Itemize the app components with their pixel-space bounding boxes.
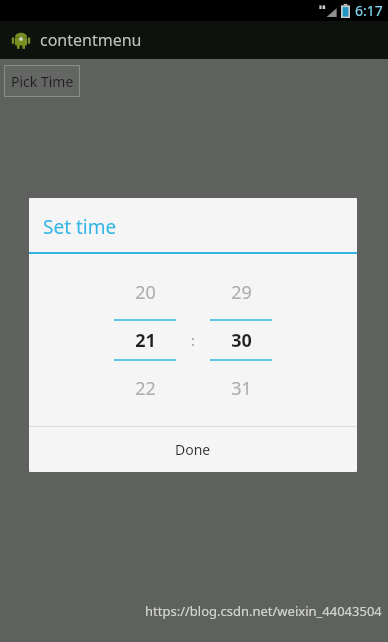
staticText: :: [191, 331, 195, 350]
staticText: https://blog.csdn.net/weixin_44043504: [145, 602, 382, 620]
staticText: Done: [175, 440, 211, 459]
button[interactable]: 21: [114, 321, 176, 359]
button[interactable]: Decrement: [210, 371, 272, 405]
staticText: 21: [135, 328, 156, 353]
button[interactable]: Decrement: [114, 371, 176, 405]
staticText: 20: [135, 280, 156, 305]
staticText: 30: [231, 328, 252, 353]
staticText: 6:17: [355, 1, 383, 20]
staticText: Pick Time: [11, 72, 74, 91]
staticText: contentmenu: [40, 29, 142, 51]
staticText: Set time: [43, 214, 117, 240]
button[interactable]: 30: [210, 321, 272, 359]
staticText: 29: [231, 280, 252, 305]
button[interactable]: Increment: [210, 275, 272, 309]
button[interactable]: Increment: [114, 275, 176, 309]
staticText: 31: [231, 376, 252, 401]
staticText: 22: [135, 376, 156, 401]
button[interactable]: Pick Time: [4, 65, 80, 97]
button[interactable]: Done: [29, 427, 357, 472]
